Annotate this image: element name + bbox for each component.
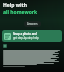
staticText: all homework bbox=[3, 9, 38, 16]
staticText: Snap a photo and bbox=[13, 32, 37, 36]
staticText: get step-by-step help bbox=[13, 36, 39, 40]
button[interactable]: Snap a photo and bbox=[2, 30, 62, 42]
button[interactable]: Assistant avatar bbox=[3, 44, 7, 48]
button[interactable]: Answers bbox=[24, 21, 41, 27]
staticText: Help with bbox=[3, 2, 27, 9]
staticText: Answers bbox=[27, 22, 38, 26]
